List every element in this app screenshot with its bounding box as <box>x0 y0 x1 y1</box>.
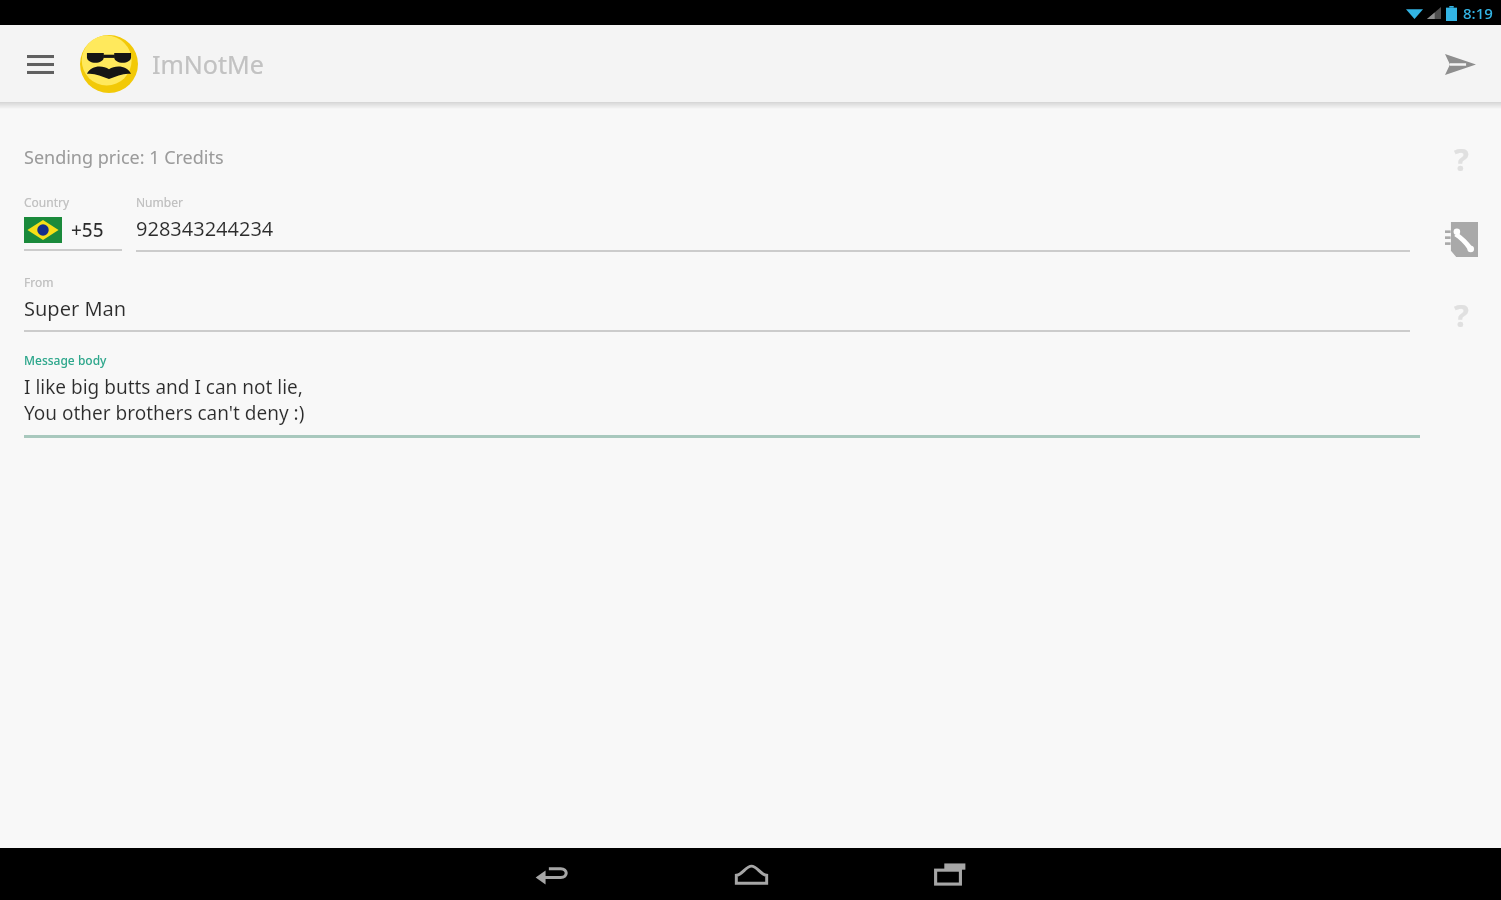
staticText: ? <box>1454 294 1469 336</box>
button[interactable]: Pick contact from phone book <box>1435 213 1487 265</box>
staticText: Number <box>136 194 183 210</box>
staticText: Country <box>24 194 70 210</box>
button[interactable]: Home <box>720 851 782 897</box>
button[interactable]: From <box>24 274 1410 332</box>
staticText: +55 <box>71 217 104 243</box>
staticText: 8:19 <box>1463 3 1493 23</box>
button[interactable]: Help about sending price <box>1435 133 1487 185</box>
button[interactable]: Send message <box>1433 37 1487 91</box>
staticText: Super Man <box>24 295 127 322</box>
button[interactable]: Country <box>24 194 122 251</box>
staticText: I like big butts and I can not lie, You … <box>24 374 305 426</box>
button[interactable]: Number <box>136 194 1410 252</box>
button[interactable]: Back <box>520 851 582 897</box>
button[interactable]: Recent apps <box>919 851 981 897</box>
staticText: From <box>24 274 54 290</box>
staticText: ? <box>1454 138 1469 180</box>
staticText: Sending price: 1 Credits <box>24 145 224 170</box>
button[interactable]: Message body <box>24 352 1420 438</box>
button[interactable]: Open navigation menu <box>16 40 64 88</box>
staticText: ImNotMe <box>152 47 264 81</box>
staticText: Message body <box>24 352 107 368</box>
staticText: 928343244234 <box>136 215 274 242</box>
button[interactable]: Help about sender name <box>1435 289 1487 341</box>
